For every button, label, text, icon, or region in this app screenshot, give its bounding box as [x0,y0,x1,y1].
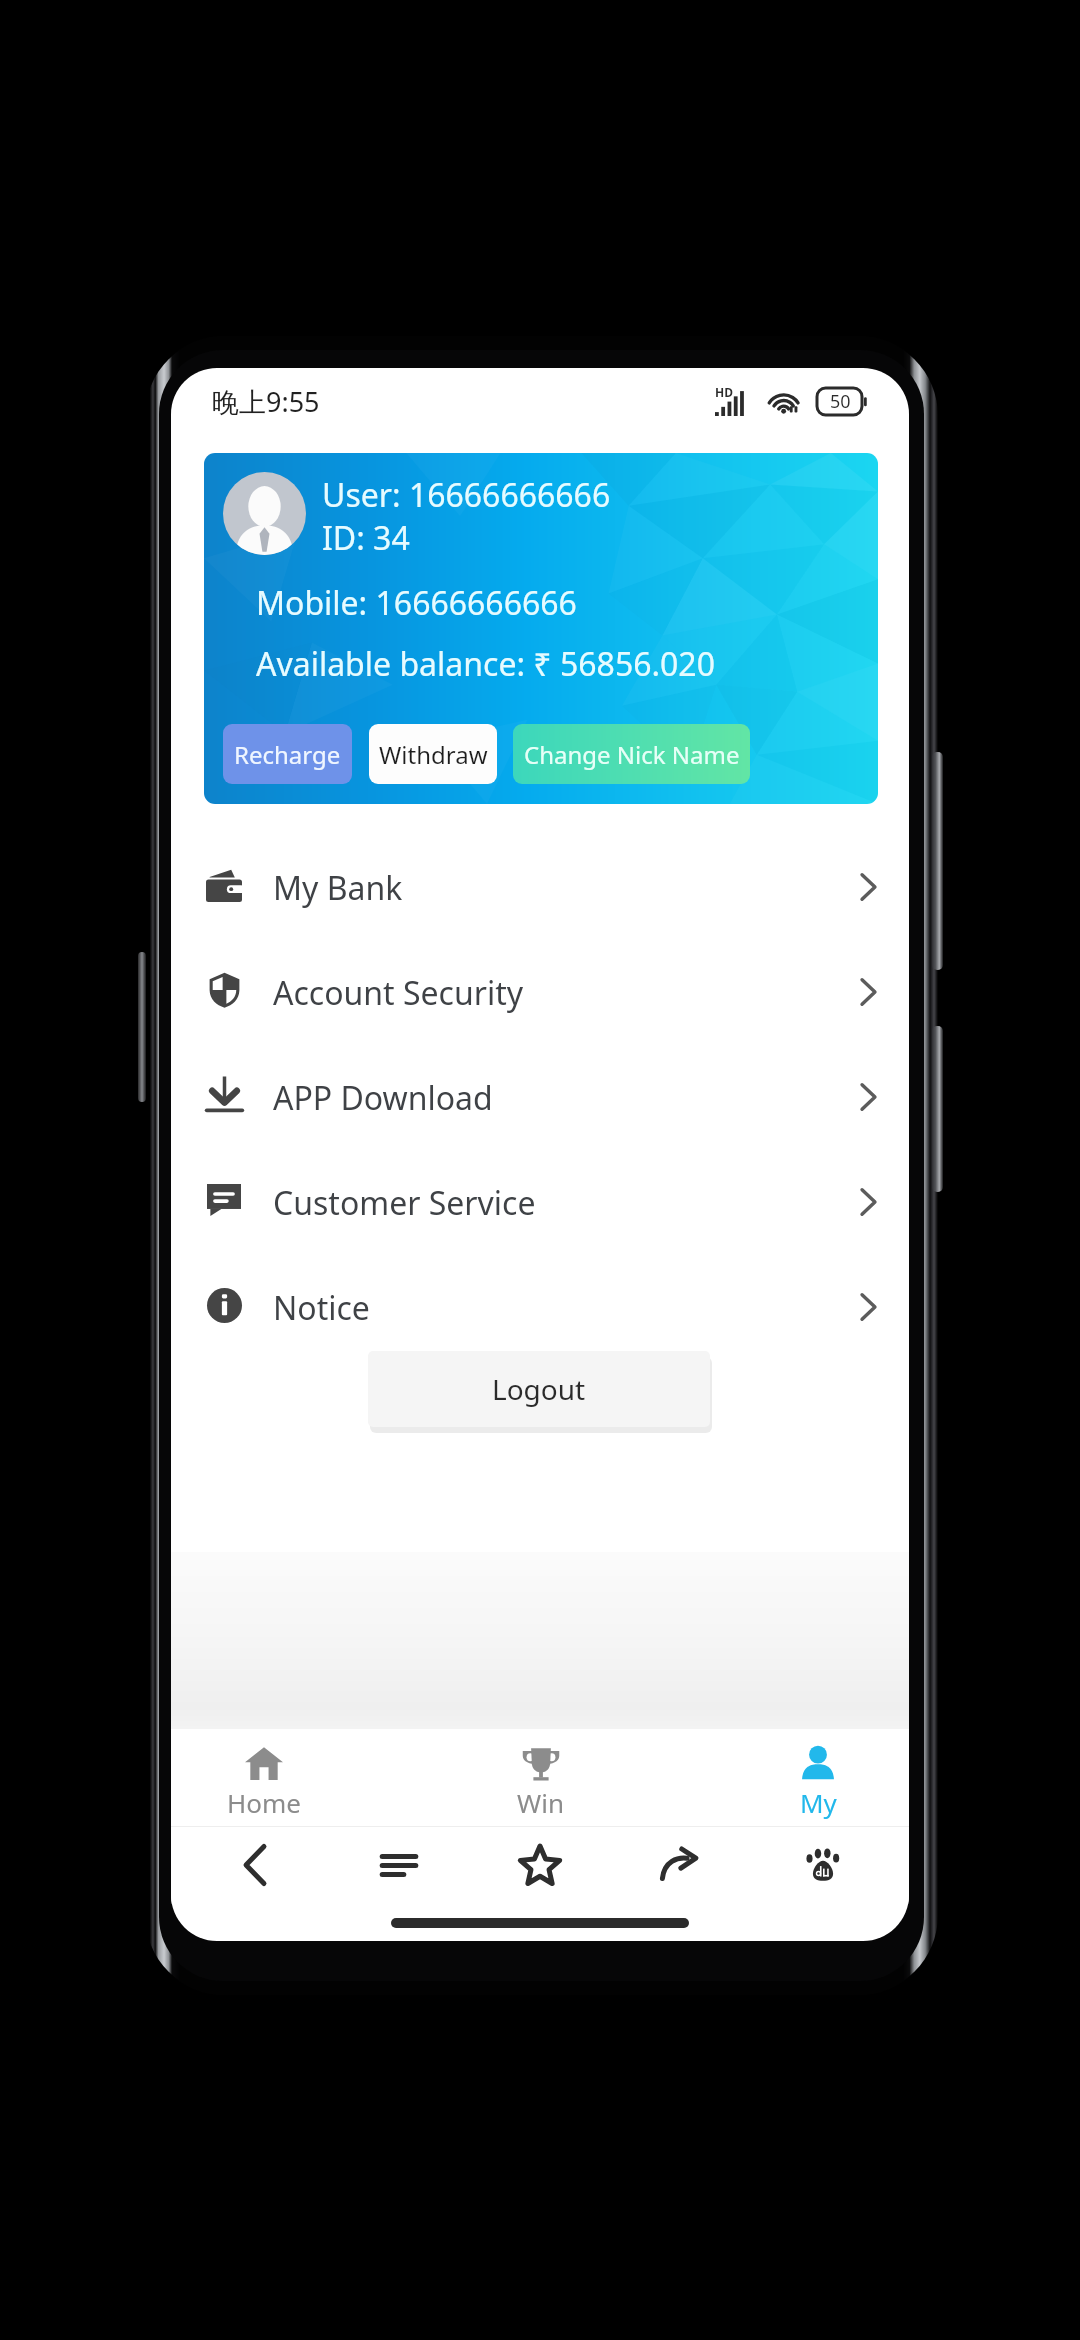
staticText: 晚上9:55 [212,383,320,420]
staticText: Home [227,1785,301,1820]
staticText: Withdraw [379,738,488,771]
button[interactable]: Win [470,1729,610,1826]
button[interactable]: Notice [171,1255,909,1360]
staticText: APP Download [273,1076,493,1120]
staticText: My Bank [273,866,403,910]
button[interactable]: My [748,1729,888,1826]
staticText: Customer Service [273,1181,536,1225]
button[interactable]: Back [185,1826,325,1904]
button[interactable]: Withdraw [369,724,497,784]
staticText: Logout [492,1370,586,1408]
staticText: ID: 34 [322,516,410,560]
button[interactable]: Recharge [223,724,352,784]
button[interactable]: Menu [329,1826,469,1904]
button[interactable]: My Bank [171,835,909,940]
button[interactable]: Logout [368,1351,710,1427]
button[interactable]: Account Security [171,940,909,1045]
staticText: Mobile: 16666666666 [256,581,577,625]
staticText: Recharge [234,738,341,771]
button[interactable]: Baidu [753,1826,893,1904]
button[interactable]: Customer Service [171,1150,909,1255]
button[interactable]: Home [194,1729,334,1826]
staticText: User: 16666666666 [322,473,611,517]
staticText: Notice [273,1286,370,1330]
button[interactable]: Bookmark [470,1826,610,1904]
button[interactable]: APP Download [171,1045,909,1150]
staticText: Available balance: ₹ 56856.020 [256,642,715,686]
staticText: Change Nick Name [524,738,740,771]
staticText: Win [517,1785,564,1820]
button[interactable]: Change Nick Name [513,724,750,784]
button[interactable]: Share [610,1826,750,1904]
staticText: My [800,1785,837,1820]
staticText: 50 [830,389,851,414]
staticText: HD [715,384,733,400]
staticText: Account Security [273,971,524,1015]
